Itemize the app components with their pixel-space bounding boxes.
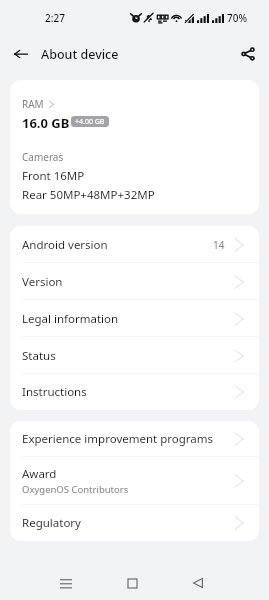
- button[interactable]: Instructions: [10, 374, 259, 410]
- staticText: RAM: [22, 97, 44, 111]
- button[interactable]: Version: [10, 263, 259, 300]
- staticText: Regulatory: [22, 515, 81, 531]
- staticText: Android version: [22, 237, 108, 253]
- button[interactable]: Back: [8, 41, 34, 67]
- staticText: Status: [22, 348, 56, 364]
- button[interactable]: Regulatory: [10, 505, 259, 541]
- button[interactable]: Experience improvement programs: [10, 421, 259, 457]
- staticText: Award: [22, 466, 57, 482]
- staticText: Experience improvement programs: [22, 431, 214, 447]
- button[interactable]: Android version: [10, 226, 259, 263]
- staticText: Cameras: [22, 150, 64, 164]
- button[interactable]: Status: [10, 337, 259, 374]
- button[interactable]: Share: [235, 41, 261, 67]
- button[interactable]: Back: [176, 570, 220, 596]
- staticText: +4.00 GB: [75, 117, 105, 127]
- button[interactable]: Award: [10, 457, 259, 505]
- staticText: Version: [22, 274, 63, 290]
- staticText: 70%: [227, 11, 247, 25]
- staticText: 16.0 GB: [22, 114, 70, 132]
- button[interactable]: Legal information: [10, 300, 259, 337]
- staticText: OxygenOS Contributors: [22, 483, 129, 496]
- staticText: 2:27: [45, 11, 65, 25]
- staticText: About device: [41, 46, 119, 63]
- button[interactable]: Home: [110, 570, 154, 596]
- staticText: 14: [213, 238, 225, 252]
- staticText: Legal information: [22, 311, 119, 327]
- staticText: Rear 50MP+48MP+32MP: [22, 187, 155, 203]
- button[interactable]: Recent apps: [44, 570, 88, 596]
- staticText: Front 16MP: [22, 168, 85, 184]
- staticText: Instructions: [22, 384, 87, 400]
